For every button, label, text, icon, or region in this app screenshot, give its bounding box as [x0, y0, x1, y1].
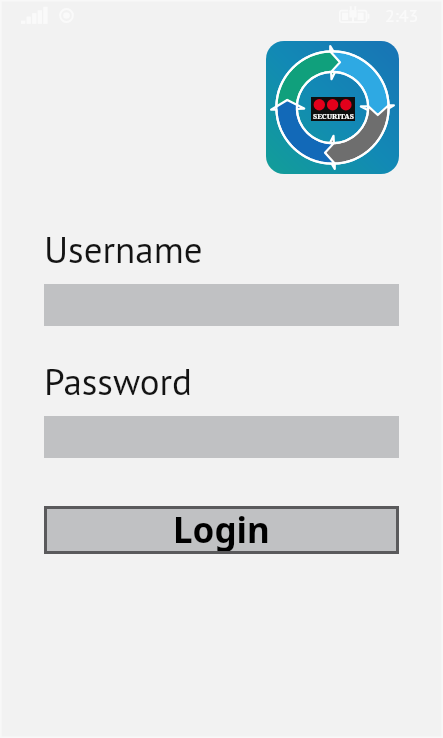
staticText: Password: [44, 357, 192, 405]
other: Signal strength: [21, 6, 49, 24]
button[interactable]: Login: [44, 506, 399, 554]
staticText: SECURITAS: [313, 111, 354, 121]
staticText: Login: [173, 506, 270, 554]
button[interactable]: Securitas logo: [266, 41, 399, 174]
other: Battery charging: [339, 5, 371, 24]
staticText: Username: [44, 225, 203, 273]
other: Data connection: [59, 8, 74, 23]
